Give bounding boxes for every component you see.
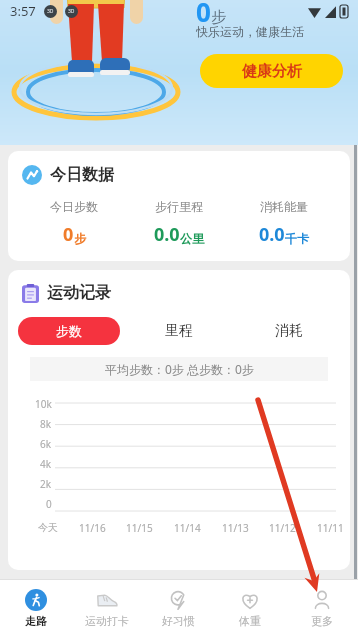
staticText: 步: [211, 8, 226, 27]
staticText: 0: [196, 0, 211, 29]
button[interactable]: 步数: [18, 317, 120, 345]
button[interactable]: 走路: [0, 580, 71, 636]
staticText: 今日步数: [50, 199, 98, 214]
staticText: 6k: [40, 437, 52, 451]
staticText: 3D: [68, 8, 75, 15]
staticText: 11/13: [222, 521, 249, 535]
staticText: 运动记录: [47, 283, 111, 303]
button[interactable]: 体重: [214, 580, 286, 636]
button[interactable]: 好习惯: [142, 580, 214, 636]
staticText: 11/12: [269, 521, 296, 535]
button[interactable]: 今日数据: [8, 151, 350, 261]
staticText: 8k: [40, 417, 52, 431]
staticText: 0.0: [259, 222, 285, 247]
staticText: 千卡: [285, 231, 309, 246]
staticText: 运动打卡: [85, 614, 129, 628]
staticText: 公里: [180, 231, 204, 246]
staticText: 0: [46, 497, 52, 511]
staticText: 里程: [165, 322, 193, 340]
button[interactable]: 健康分析: [200, 54, 343, 88]
staticText: 健康分析: [242, 62, 302, 81]
staticText: 2k: [40, 477, 52, 491]
staticText: 步行里程: [155, 199, 203, 214]
staticText: 3:57: [10, 2, 36, 20]
staticText: 0: [63, 222, 74, 247]
staticText: 今天: [38, 521, 58, 534]
staticText: 消耗: [275, 322, 303, 340]
staticText: 11/14: [174, 521, 201, 535]
button[interactable]: 运动打卡: [71, 580, 142, 636]
staticText: 4k: [40, 457, 52, 471]
staticText: 步: [74, 231, 86, 246]
staticText: 10k: [35, 397, 52, 411]
staticText: 体重: [239, 614, 261, 628]
staticText: 更多: [311, 614, 333, 628]
staticText: 好习惯: [162, 614, 195, 628]
staticText: 今日数据: [50, 165, 114, 185]
staticText: 0.0: [154, 222, 180, 247]
staticText: 3D: [47, 8, 54, 15]
staticText: 11/16: [79, 521, 106, 535]
button[interactable]: 消耗: [234, 317, 344, 345]
button[interactable]: 里程: [124, 317, 234, 345]
button[interactable]: 更多: [286, 580, 358, 636]
staticText: 步数: [56, 323, 82, 339]
staticText: 11/15: [126, 521, 153, 535]
staticText: 消耗能量: [260, 199, 308, 214]
staticText: 走路: [25, 614, 47, 628]
staticText: 平均步数：0步 总步数：0步: [105, 361, 254, 377]
staticText: 11/11: [317, 521, 344, 535]
staticText: 快乐运动，健康生活: [196, 24, 304, 39]
